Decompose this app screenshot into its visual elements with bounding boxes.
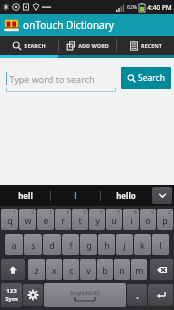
staticText: p: [162, 214, 168, 226]
staticText: f: [69, 239, 73, 251]
staticText: hell: [18, 190, 33, 201]
staticText: n: [119, 264, 125, 276]
staticText: b: [102, 264, 108, 276]
button[interactable]: 7: [106, 209, 122, 230]
staticText: 5: [83, 209, 86, 215]
staticText: w: [24, 214, 32, 226]
staticText: j: [123, 239, 126, 251]
staticText: SEARCH: [24, 42, 46, 49]
staticText: q: [7, 214, 13, 226]
staticText: l: [74, 190, 77, 201]
staticText: y: [95, 214, 100, 226]
staticText: z: [34, 264, 39, 276]
button[interactable]: x: [46, 259, 62, 280]
staticText: 1: [13, 209, 16, 215]
staticText: k: [140, 239, 145, 251]
staticText: m: [135, 264, 144, 276]
button[interactable]: Backspace: [150, 259, 173, 280]
staticText: 7: [117, 209, 120, 215]
staticText: t: [78, 214, 82, 226]
staticText: 3: [49, 209, 52, 215]
button[interactable]: c: [63, 259, 79, 280]
staticText: Search: [138, 72, 165, 84]
button[interactable]: l: [51, 185, 100, 206]
staticText: hello: [116, 190, 136, 201]
button[interactable]: d: [43, 234, 61, 255]
button[interactable]: Type word to search: [6, 64, 116, 92]
staticText: English(UK): [70, 289, 100, 296]
button[interactable]: 5: [72, 209, 88, 230]
staticText: h: [104, 239, 110, 251]
staticText: l: [159, 239, 162, 251]
staticText: .: [136, 289, 139, 301]
button[interactable]: k: [134, 234, 151, 255]
staticText: 8: [134, 209, 137, 215]
button[interactable]: Shift: [1, 259, 25, 280]
staticText: 0: [168, 209, 171, 215]
button[interactable]: j: [116, 234, 133, 255]
button[interactable]: 123: [1, 283, 22, 307]
staticText: x: [52, 264, 57, 276]
staticText: Sym: [5, 295, 18, 303]
button[interactable]: hello: [101, 185, 150, 206]
button[interactable]: hell: [0, 185, 50, 206]
staticText: e: [43, 214, 49, 226]
button[interactable]: 4: [55, 209, 71, 230]
staticText: o: [145, 214, 151, 226]
staticText: u: [111, 214, 117, 226]
button[interactable]: RECENT: [117, 36, 174, 55]
staticText: 62%: [127, 4, 137, 11]
staticText: onTouch Dictionary: [23, 18, 114, 32]
staticText: 4:40 PM: [147, 3, 172, 12]
staticText: RECENT: [141, 42, 162, 49]
staticText: g: [86, 239, 92, 251]
staticText: ADD WORD: [78, 42, 109, 49]
button[interactable]: 3: [37, 209, 54, 230]
button[interactable]: a: [5, 234, 23, 255]
button[interactable]: h: [98, 234, 115, 255]
button[interactable]: Search: [121, 67, 171, 89]
button[interactable]: l: [152, 234, 169, 255]
staticText: d: [49, 239, 55, 251]
staticText: 123: [6, 287, 17, 295]
button[interactable]: Settings: [23, 284, 43, 306]
button[interactable]: ADD WORD: [59, 36, 116, 55]
staticText: 6: [100, 209, 103, 215]
button[interactable]: n: [114, 259, 130, 280]
staticText: v: [86, 264, 91, 276]
button[interactable]: Enter: [148, 284, 173, 306]
button[interactable]: z: [28, 259, 45, 280]
button[interactable]: g: [80, 234, 97, 255]
button[interactable]: m: [131, 259, 147, 280]
button[interactable]: SEARCH: [0, 36, 58, 55]
button[interactable]: 9: [140, 209, 156, 230]
button[interactable]: 6: [89, 209, 105, 230]
staticText: s: [31, 239, 36, 251]
button[interactable]: f: [62, 234, 79, 255]
staticText: a: [11, 239, 17, 251]
staticText: 9: [151, 209, 154, 215]
button[interactable]: 8: [123, 209, 139, 230]
button[interactable]: s: [24, 234, 42, 255]
staticText: 2: [31, 209, 34, 215]
button[interactable]: b: [97, 259, 113, 280]
button[interactable]: .: [127, 284, 147, 306]
button[interactable]: English(UK): [44, 283, 126, 307]
staticText: c: [69, 264, 74, 276]
staticText: i: [130, 214, 133, 226]
button[interactable]: v: [80, 259, 96, 280]
staticText: Type word to search: [9, 73, 95, 85]
button[interactable]: 2: [19, 209, 36, 230]
button[interactable]: 1: [1, 209, 18, 230]
staticText: 4: [66, 209, 69, 215]
staticText: r: [61, 214, 65, 226]
button[interactable]: 0: [157, 209, 173, 230]
button[interactable]: More suggestions: [152, 187, 172, 204]
